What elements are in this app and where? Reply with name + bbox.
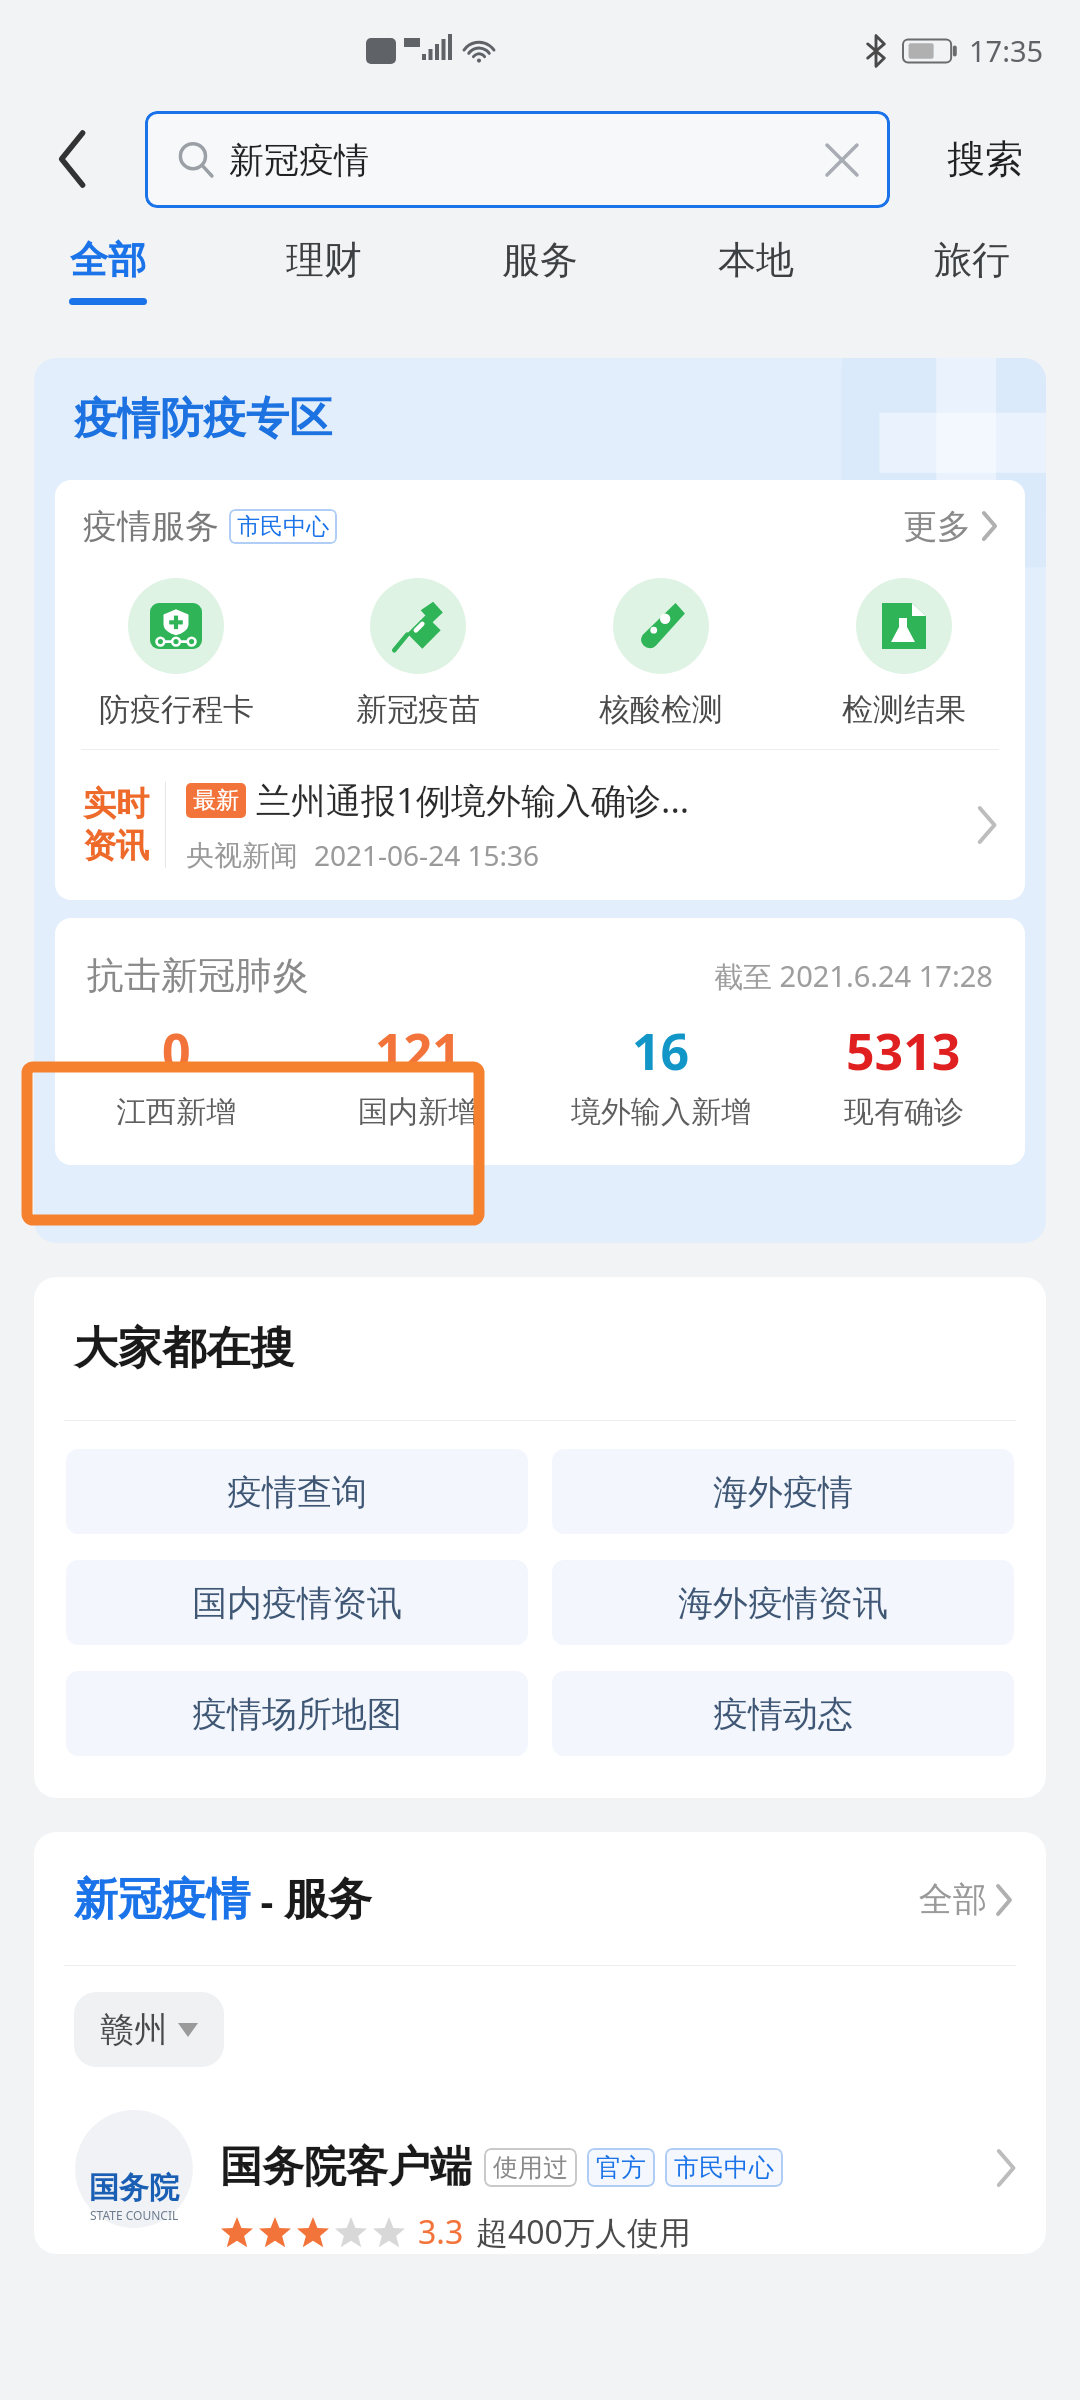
button[interactable]: 搜索 <box>890 100 1080 218</box>
staticText: 疫情服务 <box>83 505 219 548</box>
button[interactable]: 实时 <box>55 750 1025 900</box>
button[interactable]: 新冠疫苗 <box>297 578 539 729</box>
staticText: 全部 <box>70 236 146 284</box>
button[interactable]: 疫情查询 <box>66 1449 528 1534</box>
staticText: 更多 <box>903 505 971 548</box>
staticText: 服务 <box>502 236 578 284</box>
staticText: 17:35 <box>969 31 1044 70</box>
staticText: STATE COUNCIL <box>90 2207 179 2223</box>
staticText: 防疫行程卡 <box>99 690 254 729</box>
staticText: 本地 <box>718 236 794 284</box>
button[interactable]: 海外疫情资讯 <box>552 1560 1014 1645</box>
button[interactable]: 全部 <box>919 1878 1012 1921</box>
button[interactable]: 海外疫情 <box>552 1449 1014 1534</box>
button[interactable]: Back <box>0 100 145 218</box>
staticText: 海外疫情资讯 <box>678 1581 888 1625</box>
staticText: 境外输入新增 <box>571 1093 751 1131</box>
button[interactable]: 国内疫情资讯 <box>66 1560 528 1645</box>
button[interactable]: 121 <box>297 1017 539 1131</box>
staticText: 全部 <box>919 1878 987 1921</box>
staticText: 新冠疫情 <box>229 138 369 182</box>
staticText: 0 <box>162 1017 191 1085</box>
staticText: 最新 <box>193 786 239 815</box>
staticText: 抗击新冠肺炎 <box>87 952 309 999</box>
staticText: 官方 <box>596 2152 646 2183</box>
staticText: 现有确诊 <box>844 1093 964 1131</box>
button[interactable]: 0 <box>55 1017 297 1131</box>
button[interactable]: 服务 <box>432 218 648 328</box>
button[interactable]: 疫情动态 <box>552 1671 1014 1756</box>
staticText: 国内新增 <box>358 1093 478 1131</box>
staticText: 实时 <box>83 783 149 825</box>
button[interactable]: 本地 <box>648 218 864 328</box>
staticText: 江西新增 <box>116 1093 236 1131</box>
button[interactable]: 疫情场所地图 <box>66 1671 528 1756</box>
button[interactable]: 疫情服务 <box>55 480 1025 572</box>
staticText: 大家都在搜 <box>74 1321 294 1376</box>
staticText: 赣州 <box>100 2008 168 2051</box>
button[interactable]: 防疫行程卡 <box>55 578 297 729</box>
staticText: - <box>250 1873 284 1927</box>
staticText: 5313 <box>846 1017 961 1085</box>
staticText: 2021-06-24 15:36 <box>314 836 540 874</box>
staticText: 疫情防疫专区 <box>74 392 332 446</box>
staticText: 疫情查询 <box>227 1470 367 1514</box>
staticText: 旅行 <box>934 236 1010 284</box>
staticText: 新冠疫情 <box>74 1872 250 1927</box>
staticText: 检测结果 <box>842 690 966 729</box>
button[interactable]: 理财 <box>216 218 432 328</box>
button[interactable]: 新冠疫情 <box>145 111 890 208</box>
staticText: 央视新闻 <box>186 838 298 873</box>
button[interactable]: 赣州 <box>74 1992 224 2067</box>
staticText: 121 <box>375 1017 461 1085</box>
staticText: 新冠疫苗 <box>356 690 480 729</box>
button[interactable]: 检测结果 <box>782 578 1025 729</box>
button[interactable]: 旅行 <box>864 218 1080 328</box>
staticText: 理财 <box>286 236 362 284</box>
button[interactable]: 5313 <box>782 1017 1025 1131</box>
button[interactable]: 核酸检测 <box>539 578 782 729</box>
staticText: 兰州通报1例境外输入确诊... <box>256 776 690 824</box>
staticText: 海外疫情 <box>713 1470 853 1514</box>
staticText: 国内疫情资讯 <box>192 1581 402 1625</box>
staticText: 截至 2021.6.24 17:28 <box>714 956 993 996</box>
staticText: 市民中心 <box>674 2152 774 2183</box>
staticText: 国务院 <box>89 2169 179 2207</box>
button[interactable]: Clear <box>816 134 868 186</box>
staticText: 16 <box>632 1017 690 1085</box>
button[interactable]: 16 <box>539 1017 782 1131</box>
button[interactable]: 国务院 <box>34 2105 1046 2254</box>
staticText: 市民中心 <box>237 512 329 541</box>
staticText: 3.3 <box>418 2210 464 2254</box>
staticText: 使用过 <box>493 2152 568 2183</box>
staticText: 疫情场所地图 <box>192 1692 402 1736</box>
staticText: 搜索 <box>947 135 1023 183</box>
staticText: 超400万人使用 <box>476 2210 691 2254</box>
staticText: 核酸检测 <box>599 690 723 729</box>
staticText: 资讯 <box>83 825 149 867</box>
staticText: 国务院客户端 <box>220 2141 472 2194</box>
button[interactable]: 全部 <box>0 218 216 328</box>
staticText: 服务 <box>284 1872 372 1927</box>
staticText: 疫情动态 <box>713 1692 853 1736</box>
